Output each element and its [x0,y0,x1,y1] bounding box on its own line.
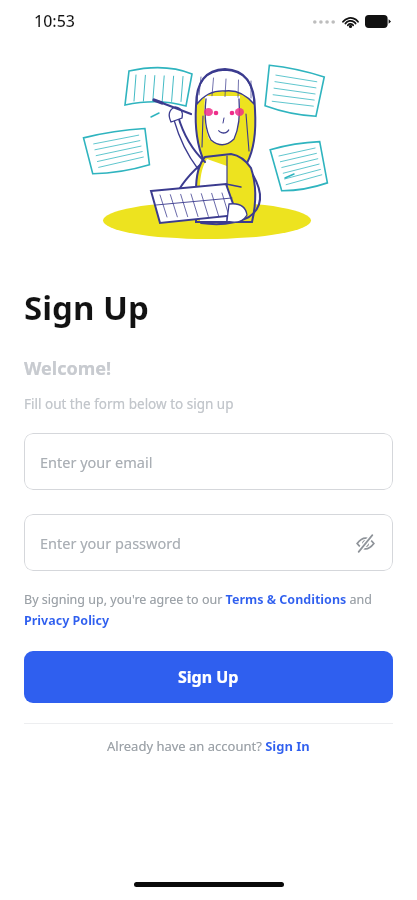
button[interactable]: Enter your email [24,433,393,490]
button[interactable]: Already have an account? Sign In [24,737,393,755]
button[interactable]: Show password [351,529,379,557]
staticText: Fill out the form below to sign up [24,395,234,413]
staticText: By signing up, you're agree to our Terms… [24,591,393,629]
staticText: Sign Up [24,285,149,330]
button[interactable]: Sign Up [24,651,393,703]
staticText: Already have an account? Sign In [107,737,310,755]
staticText: Sign Up [178,666,239,688]
staticText: 10:53 [34,10,75,32]
button[interactable]: Enter your password [24,514,393,571]
staticText: Welcome! [24,356,112,381]
staticText: Enter your email [40,452,379,472]
staticText: Enter your password [40,533,351,553]
button[interactable]: By signing up, you're agree to our Terms… [24,591,393,629]
